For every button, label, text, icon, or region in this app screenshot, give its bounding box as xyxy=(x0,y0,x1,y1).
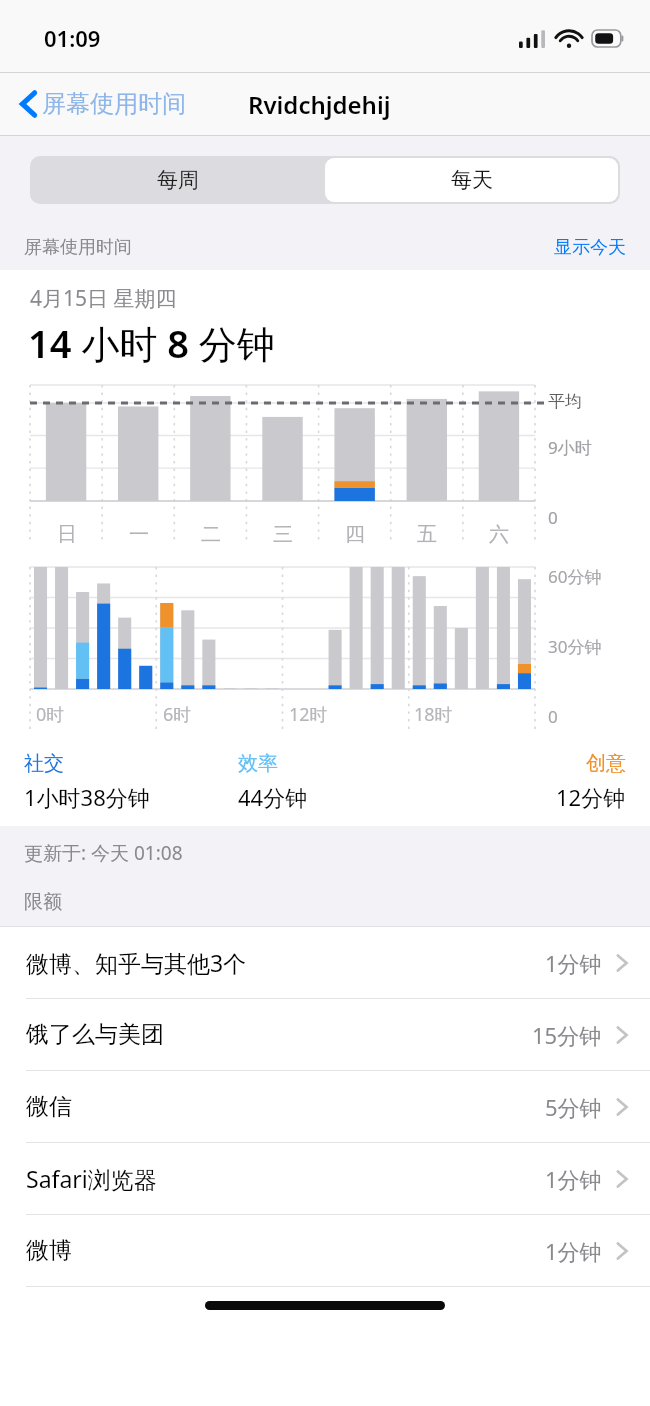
staticText: 12分钟 xyxy=(556,782,626,812)
staticText: 0 xyxy=(548,705,558,728)
staticText: 12时 xyxy=(289,702,328,727)
staticText: 平均 xyxy=(548,391,582,412)
staticText: 30分钟 xyxy=(548,635,602,658)
button[interactable]: 每周 xyxy=(30,156,325,204)
staticText: Safari浏览器 xyxy=(26,1163,545,1194)
staticText: 屏幕使用时间 xyxy=(42,89,186,119)
staticText: 微博 xyxy=(26,1236,545,1265)
staticText: 9小时 xyxy=(548,436,592,459)
button[interactable]: 显示今天 xyxy=(546,230,634,265)
button[interactable]: 微博 xyxy=(0,1215,650,1286)
staticText: 60分钟 xyxy=(548,565,602,588)
staticText: 14 小时 8 分钟 xyxy=(28,317,275,369)
staticText: 1分钟 xyxy=(545,948,602,978)
staticText: 0 xyxy=(548,506,558,529)
staticText: 5分钟 xyxy=(545,1092,602,1122)
staticText: 微信 xyxy=(26,1092,545,1121)
staticText: 四 xyxy=(345,522,365,547)
button[interactable]: 微信 xyxy=(0,1071,650,1142)
staticText: 五 xyxy=(417,522,437,547)
staticText: 饿了么与美团 xyxy=(26,1020,532,1049)
staticText: 1分钟 xyxy=(545,1164,602,1194)
staticText: 社交 xyxy=(24,751,64,776)
staticText: 三 xyxy=(273,522,293,547)
staticText: 日 xyxy=(57,522,77,547)
staticText: 44分钟 xyxy=(238,782,308,812)
button[interactable] xyxy=(325,156,620,204)
staticText: 15分钟 xyxy=(532,1020,602,1050)
staticText: 18时 xyxy=(414,702,453,727)
staticText: 每天 xyxy=(451,167,493,193)
staticText: 01:09 xyxy=(44,23,101,53)
staticText: 一 xyxy=(129,522,149,547)
button[interactable]: Safari浏览器 xyxy=(0,1143,650,1214)
staticText: 创意 xyxy=(586,751,626,776)
staticText: 1分钟 xyxy=(545,1236,602,1266)
staticText: 显示今天 xyxy=(554,236,626,259)
staticText: 效率 xyxy=(238,751,278,776)
staticText: 微博、知乎与其他3个 xyxy=(26,947,545,978)
staticText: 1小时38分钟 xyxy=(24,782,150,812)
button[interactable]: 微博、知乎与其他3个 xyxy=(0,927,650,998)
button[interactable]: 每天 xyxy=(325,158,618,202)
staticText: 二 xyxy=(201,522,221,547)
staticText: 限额 xyxy=(24,890,62,914)
staticText: Rvidchjdehij xyxy=(248,88,391,121)
button[interactable]: 饿了么与美团 xyxy=(0,999,650,1070)
button[interactable]: 屏幕使用时间 xyxy=(14,83,192,125)
staticText: 屏幕使用时间 xyxy=(24,236,132,259)
staticText: 六 xyxy=(489,522,509,547)
staticText: 更新于: 今天 01:08 xyxy=(24,840,183,866)
staticText: 每周 xyxy=(157,167,199,193)
staticText: 4月15日 星期四 xyxy=(30,284,177,313)
staticText: 6时 xyxy=(163,702,192,727)
staticText: 0时 xyxy=(36,702,65,727)
